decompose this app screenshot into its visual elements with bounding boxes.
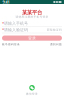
button[interactable]: 账号密码登录: [2, 43, 20, 46]
staticText: 账号密码登录: [2, 43, 20, 46]
staticText: 遇到问题: [50, 43, 62, 46]
staticText: 微信登录: [26, 92, 38, 95]
staticText: 请输入手机号: [4, 21, 28, 26]
button[interactable]: 登录: [2, 35, 62, 41]
staticText: *: [2, 27, 4, 32]
staticText: 9:41: [2, 0, 9, 5]
staticText: 获取验证码: [47, 28, 62, 31]
staticText: 某某平台: [22, 9, 42, 16]
staticText: *: [2, 21, 4, 26]
button[interactable]: 获取验证码: [47, 28, 62, 31]
staticText: 请使用注册的手机号登录: [15, 15, 48, 19]
button[interactable]: 遇到问题: [50, 43, 62, 46]
staticText: 请输入验证码: [4, 27, 28, 32]
staticText: 登录: [28, 36, 36, 40]
button[interactable]: WeChat login: [26, 85, 38, 95]
